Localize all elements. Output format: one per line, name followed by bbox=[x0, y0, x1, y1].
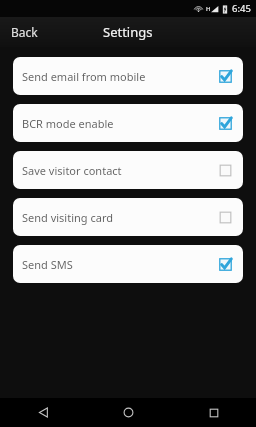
other: Unchecked bbox=[219, 211, 232, 224]
staticText: Send visiting card bbox=[22, 210, 219, 225]
other: Checked bbox=[219, 117, 232, 130]
staticText: Settings bbox=[103, 23, 153, 41]
button[interactable]: Send SMS bbox=[13, 245, 243, 283]
button[interactable]: Recents bbox=[171, 398, 256, 427]
button[interactable]: Home bbox=[86, 398, 171, 427]
other: Checked bbox=[219, 258, 232, 271]
staticText: Send SMS bbox=[22, 257, 219, 272]
button[interactable]: Back bbox=[0, 19, 49, 45]
staticText: Save visitor contact bbox=[22, 163, 219, 178]
button[interactable]: Send visiting card bbox=[13, 198, 243, 236]
staticText: BCR mode enable bbox=[22, 116, 219, 131]
button[interactable]: Send email from mobile bbox=[13, 57, 243, 95]
button[interactable]: Save visitor contact bbox=[13, 151, 243, 189]
staticText: Back bbox=[11, 24, 38, 40]
staticText: 6:45 bbox=[232, 2, 251, 15]
button[interactable]: BCR mode enable bbox=[13, 104, 243, 142]
staticText: Send email from mobile bbox=[22, 69, 219, 84]
other: Checked bbox=[219, 70, 232, 83]
button[interactable]: Back bbox=[0, 398, 86, 427]
other: Unchecked bbox=[219, 164, 232, 177]
staticText: H bbox=[206, 5, 211, 13]
